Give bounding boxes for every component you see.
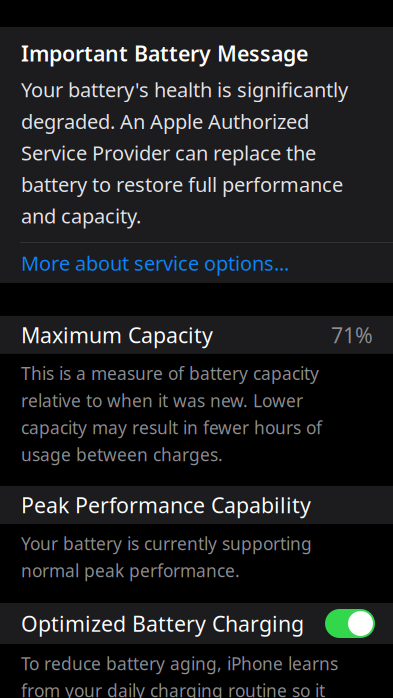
staticText: 71% [331,321,373,349]
staticText: More about service options... [21,250,289,276]
staticText: This is a measure of battery capacity re… [21,362,322,466]
button[interactable]: More about service options... [0,243,393,283]
staticText: To reduce battery aging, iPhone learns f… [21,652,338,698]
staticText: Important Battery Message [21,39,308,67]
staticText: Your battery's health is significantly d… [21,76,348,229]
staticText: Optimized Battery Charging [21,609,304,638]
staticText: Maximum Capacity [21,321,213,349]
button[interactable]: Optimized Battery Charging [0,603,393,644]
staticText: Your battery is currently supporting nor… [21,532,312,582]
staticText: Peak Performance Capability [21,491,311,519]
